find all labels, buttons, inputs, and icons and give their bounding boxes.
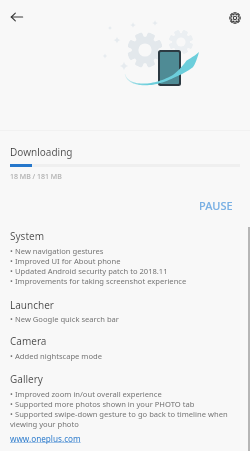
staticText: www.oneplus.com: [10, 433, 81, 444]
staticText: •: [10, 389, 13, 399]
staticText: System: [10, 229, 44, 243]
staticText: 18 MB / 181 MB: [10, 172, 62, 182]
staticText: Supported more photos shown in your PHOT…: [15, 399, 195, 409]
staticText: Improvements for taking screenshot exper…: [15, 276, 187, 286]
staticText: Added nightscape mode: [15, 351, 102, 361]
staticText: •: [10, 256, 13, 266]
staticText: Improved UI for About phone: [15, 256, 121, 266]
button[interactable]: PAUSE: [191, 193, 241, 218]
staticText: PAUSE: [199, 198, 233, 213]
staticText: •: [10, 276, 13, 286]
staticText: •: [10, 266, 13, 276]
staticText: Improved zoom in/out overall experience: [15, 389, 162, 399]
staticText: Camera: [10, 334, 47, 348]
staticText: •: [10, 351, 13, 361]
staticText: Supported swipe-down gesture to go back …: [15, 409, 228, 419]
staticText: •: [10, 409, 13, 419]
button[interactable]: Back: [3, 3, 31, 31]
staticText: Launcher: [10, 298, 54, 312]
staticText: •: [10, 399, 13, 409]
staticText: Downloading: [10, 145, 73, 159]
staticText: •: [10, 314, 13, 324]
staticText: •: [10, 246, 13, 256]
staticText: New Google quick search bar: [15, 314, 119, 324]
staticText: Gallery: [10, 372, 43, 386]
staticText: Updated Android security patch to 2018.1…: [15, 266, 168, 276]
button[interactable]: Settings: [221, 4, 249, 32]
staticText: viewing your photo: [10, 419, 79, 429]
staticText: New navigation gestures: [15, 246, 104, 256]
button[interactable]: www.oneplus.com: [10, 433, 81, 444]
